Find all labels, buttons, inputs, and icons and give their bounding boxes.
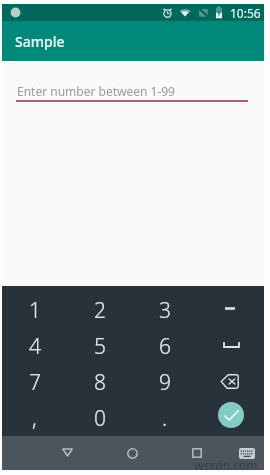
staticText: 6 (159, 332, 171, 361)
button[interactable]: Change keyboard (236, 436, 258, 470)
staticText: Enter number between 1-99 (17, 83, 175, 99)
button[interactable]: Recent apps (185, 436, 209, 470)
button[interactable]: 5 (67, 328, 132, 364)
staticText: 5 (94, 332, 106, 361)
staticText: , (32, 404, 37, 433)
staticText: 2 (94, 296, 106, 325)
button[interactable]: Home (120, 436, 144, 470)
button[interactable]: 3 (132, 292, 198, 328)
button[interactable]: Backspace (198, 364, 264, 400)
staticText: 10:56 (230, 5, 261, 21)
staticText: 9 (159, 368, 171, 397)
staticText: 1 (29, 296, 41, 325)
staticText: 8 (94, 368, 106, 397)
other: Done (218, 402, 244, 428)
staticText: Sample (15, 32, 65, 51)
staticText: wsxdn.com (194, 457, 258, 473)
button[interactable]: , (2, 400, 67, 436)
button[interactable]: 1 (2, 292, 67, 328)
button[interactable]: Minus (198, 292, 264, 328)
button[interactable]: 7 (2, 364, 67, 400)
staticText: 0 (94, 404, 106, 433)
button[interactable]: Done (198, 400, 264, 436)
button[interactable]: 8 (67, 364, 132, 400)
button[interactable]: Space (198, 328, 264, 364)
other: Minus (198, 292, 264, 328)
button[interactable]: Back (55, 436, 79, 470)
button[interactable]: 9 (132, 364, 198, 400)
staticText: 4 (29, 332, 41, 361)
other: Space (198, 328, 264, 364)
button[interactable]: 4 (2, 328, 67, 364)
other: Backspace (198, 364, 264, 400)
staticText: 3 (159, 296, 171, 325)
button[interactable]: 6 (132, 328, 198, 364)
staticText: . (162, 404, 168, 433)
staticText: 7 (29, 368, 41, 397)
button[interactable]: . (132, 400, 198, 436)
button[interactable]: 2 (67, 292, 132, 328)
button[interactable]: 0 (67, 400, 132, 436)
